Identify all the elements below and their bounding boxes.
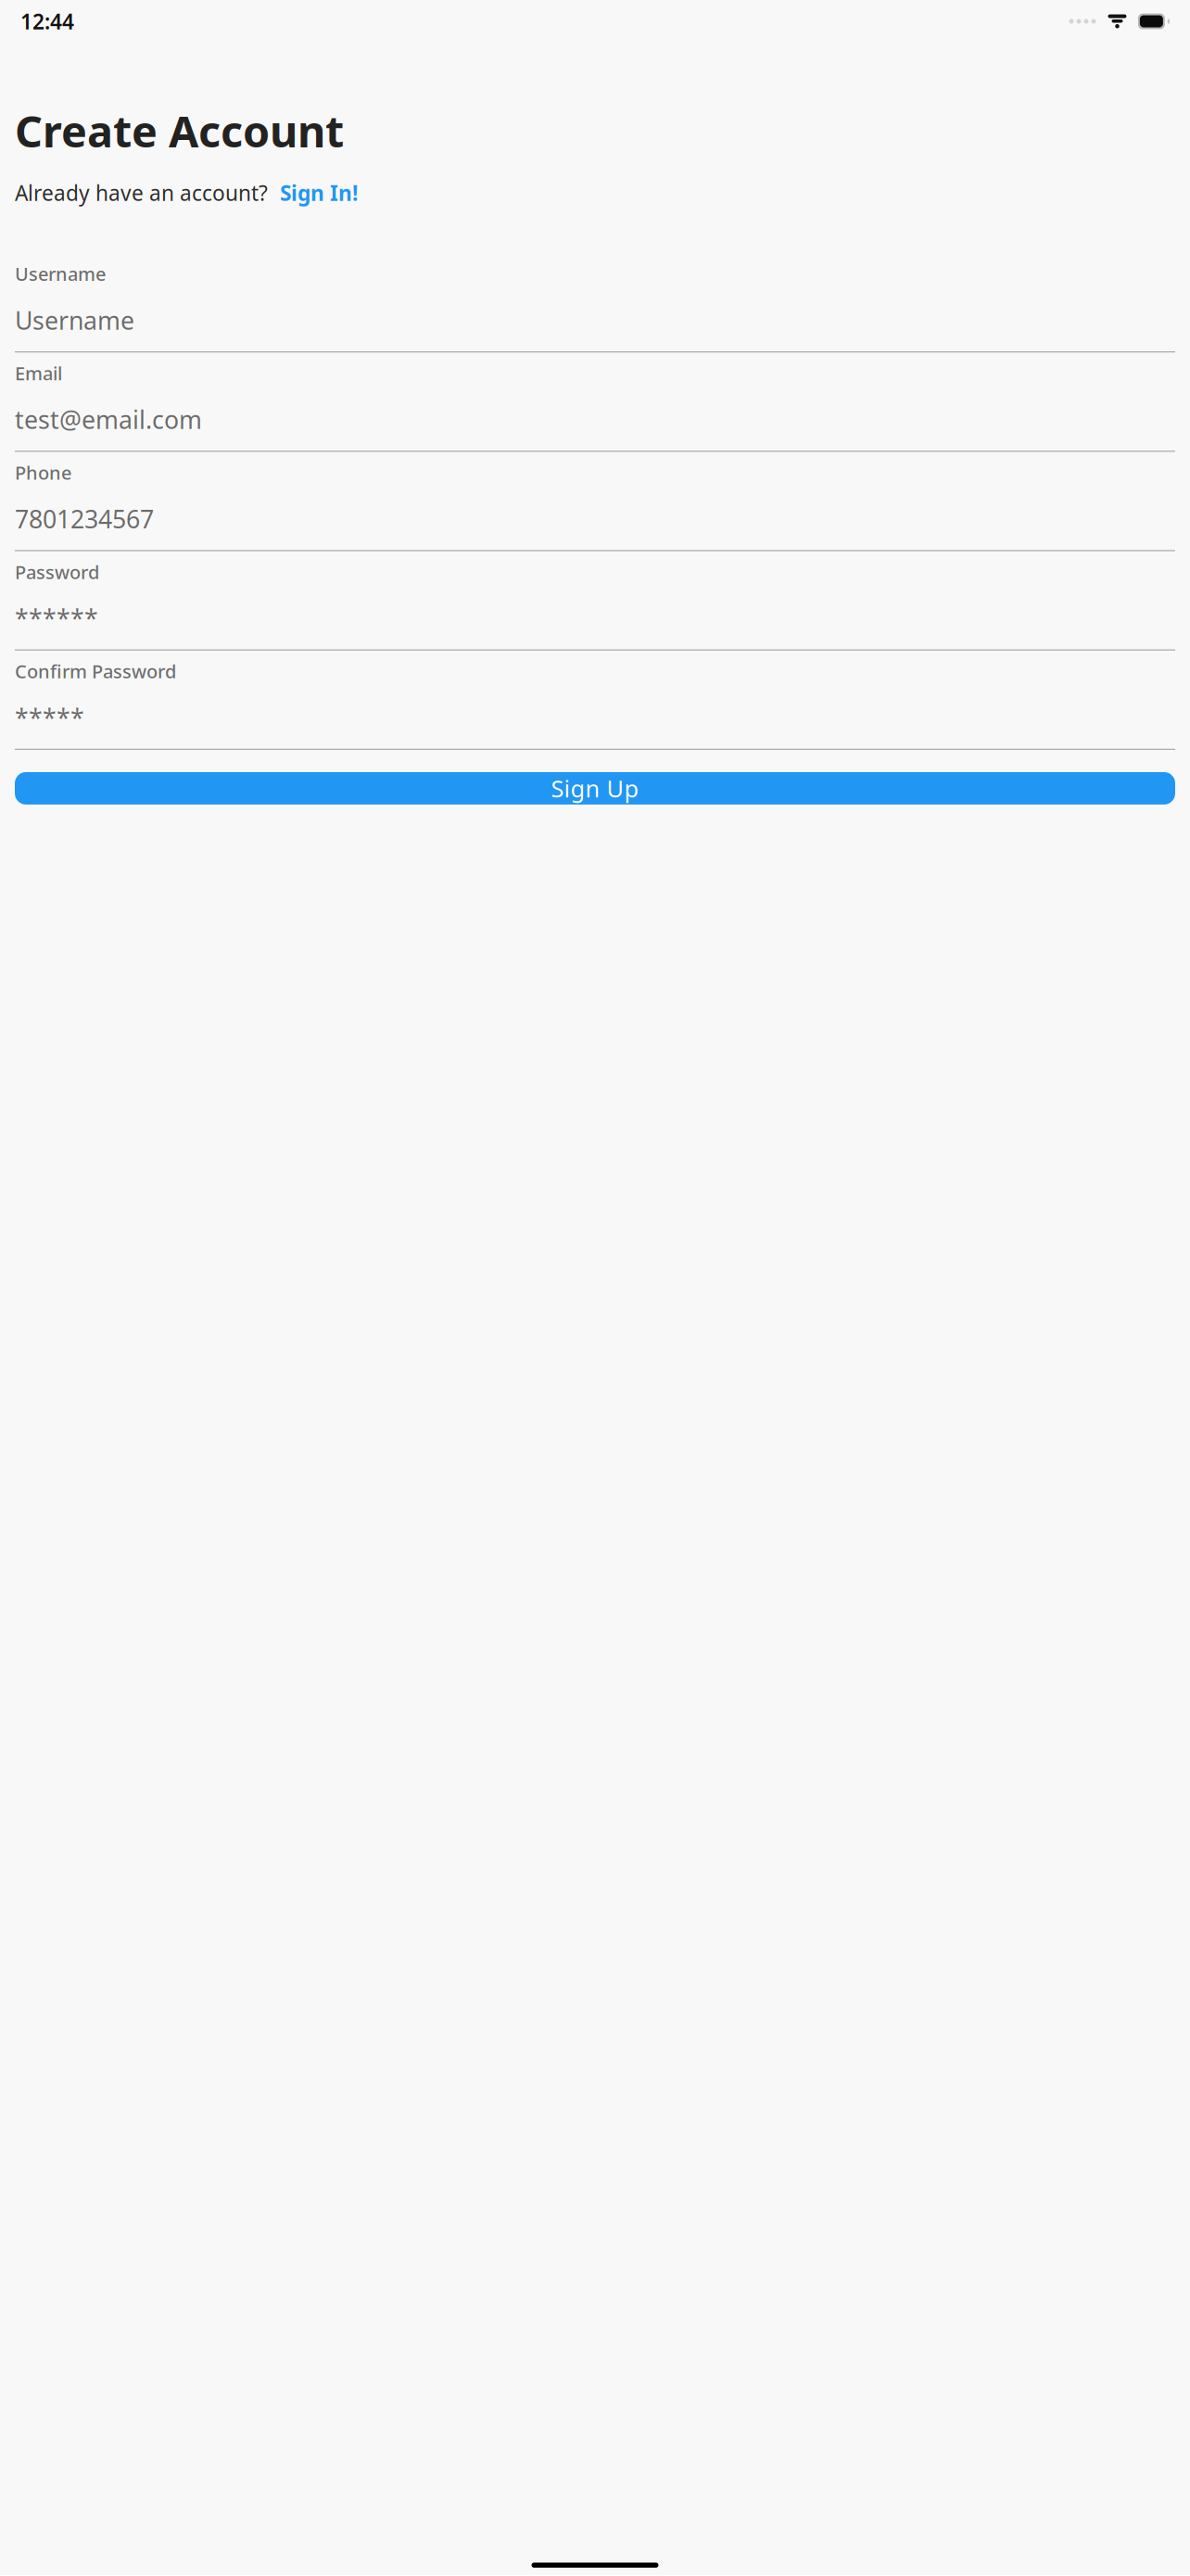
staticText: Email [15,361,62,385]
staticText: Phone [15,460,71,485]
button[interactable]: Sign Up [0,772,1190,805]
button[interactable]: Phone [0,452,1190,551]
button[interactable]: Password [0,551,1190,651]
staticText: 7801234567 [15,502,154,535]
button[interactable]: Confirm Password [0,651,1190,750]
button[interactable]: Username [0,253,1190,353]
staticText: Already have an account? [15,179,268,207]
staticText: Username [15,261,106,286]
staticText: ***** [15,701,84,734]
staticText: Confirm Password [15,659,176,684]
staticText: Sign In! [280,179,358,207]
staticText: Sign Up [551,773,639,804]
button[interactable]: Email [0,352,1190,452]
staticText: Password [15,560,99,584]
staticText: Create Account [15,102,344,159]
staticText: ****** [15,602,98,635]
staticText: 12:44 [20,7,74,35]
button[interactable]: Sign In! [280,179,358,207]
staticText: test@email.com [15,403,202,436]
staticText: Username [15,304,134,336]
